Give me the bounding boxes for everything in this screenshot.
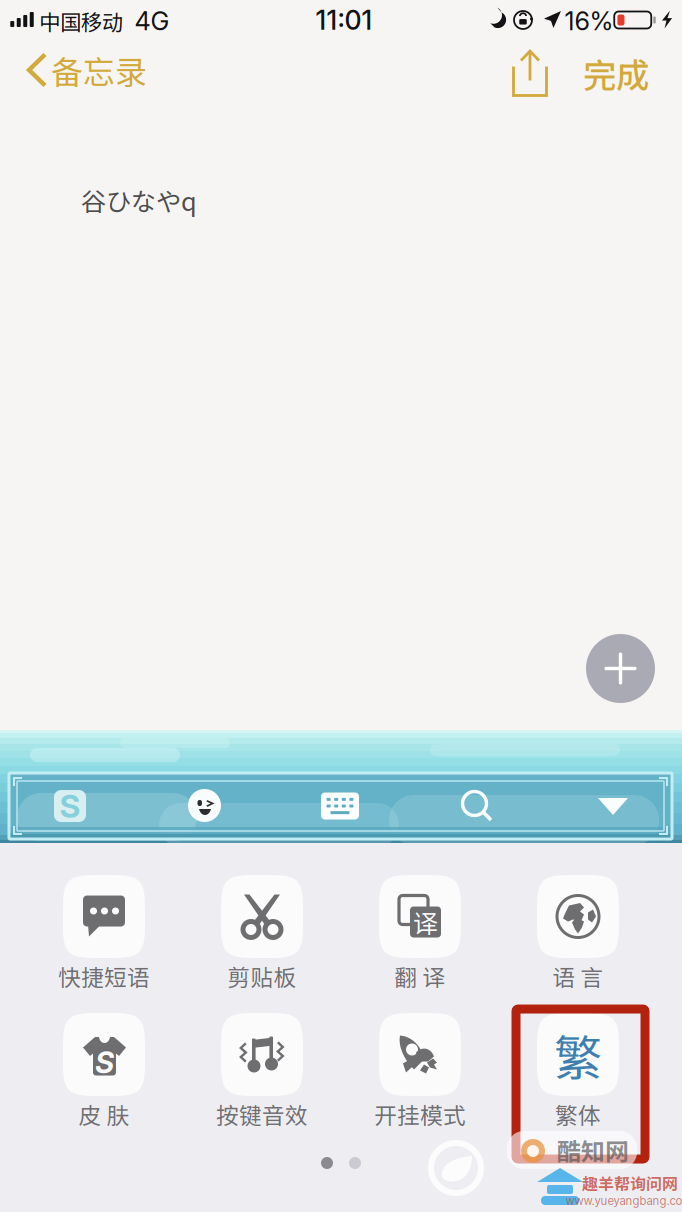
staticText: 按键音效 [216,1098,308,1130]
button[interactable]: 搜索 [459,788,495,824]
staticText: 译 [413,904,438,940]
staticText: 趣羊帮询问网 [582,1171,678,1195]
staticText: 开挂模式 [374,1098,466,1130]
staticText: 酷知网 [557,1133,629,1167]
staticText: 繁体 [555,1098,601,1130]
button[interactable]: 表情 [188,789,222,823]
button[interactable]: 完成 [570,46,662,100]
staticText: 备忘录 [51,47,147,93]
button[interactable]: S [25,1013,183,1151]
button[interactable]: 键盘 [320,791,360,821]
button[interactable]: 剪贴板 [183,875,341,1013]
staticText: 翻 译 [394,960,445,992]
button[interactable]: 分享 [511,48,549,97]
staticText: 完成 [583,49,649,97]
button[interactable]: 译 [341,875,499,1013]
button[interactable]: 开挂模式 [341,1013,499,1151]
staticText: 谷ひなやq [81,182,197,218]
button[interactable]: 快捷短语 [25,875,183,1013]
button[interactable]: 繁 [499,1013,657,1151]
staticText: 剪贴板 [227,960,296,992]
button[interactable]: 新建 [586,634,655,703]
staticText: S [95,1045,114,1080]
staticText: 11:01 [315,4,372,36]
staticText: 16% [564,6,613,36]
staticText: 繁 [554,1020,602,1089]
staticText: 语 言 [552,960,603,992]
staticText: 快捷短语 [58,960,150,992]
staticText: 皮 肤 [78,1098,129,1130]
staticText: S [59,787,80,825]
staticText: 中国移动 [39,6,123,36]
button[interactable]: 收起键盘 [598,798,628,815]
button[interactable]: 按键音效 [183,1013,341,1151]
button[interactable]: 备忘录 [0,42,160,104]
staticText: www.yueyangbang.com [565,1194,682,1208]
button[interactable]: 语 言 [499,875,657,1013]
staticText: 4G [134,6,169,36]
button[interactable]: 搜狗输入法 [53,789,87,823]
